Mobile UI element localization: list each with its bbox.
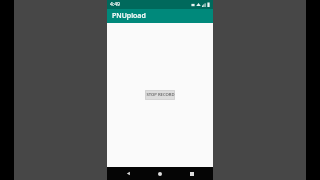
- staticText: 4:49: [110, 1, 120, 8]
- staticText: PNUpload: [112, 11, 146, 21]
- button[interactable]: STOP RECORD: [145, 90, 175, 100]
- button[interactable]: Back: [117, 167, 139, 180]
- staticText: STOP RECORD: [146, 92, 175, 98]
- button[interactable]: Home: [149, 167, 171, 180]
- button[interactable]: Recent apps: [181, 167, 203, 180]
